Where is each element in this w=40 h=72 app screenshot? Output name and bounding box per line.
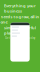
- staticText: needs to grow, all in one: [0, 14, 39, 25]
- staticText: Get started free today: [5, 36, 35, 40]
- staticText: simple, powerful place: [4, 25, 36, 36]
- staticText: Everything your business: [4, 3, 36, 14]
